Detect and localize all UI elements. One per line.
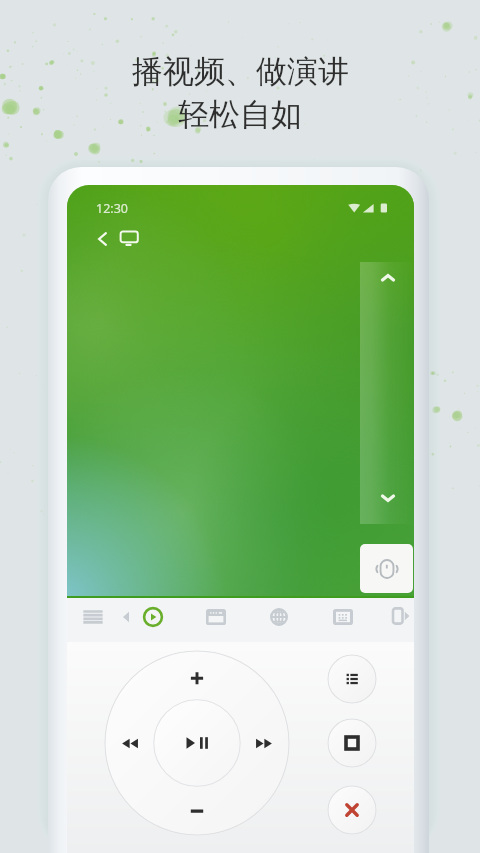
button[interactable]: Page scroll	[360, 262, 414, 524]
button[interactable]: Cast to screen	[116, 226, 142, 252]
button[interactable]: Mouse mode	[360, 544, 413, 593]
button[interactable]: Next tab	[389, 601, 414, 631]
button[interactable]: Window	[201, 602, 231, 632]
staticText: 播视频、做演讲	[132, 52, 349, 91]
staticText: 轻松自如	[178, 95, 302, 134]
button[interactable]: Back	[89, 226, 115, 252]
button[interactable]: Stop	[327, 718, 377, 768]
button[interactable]: Previous tab	[111, 602, 141, 632]
button[interactable]: Playlist	[327, 654, 377, 704]
staticText: 12:30	[96, 200, 128, 217]
button[interactable]: Keyboard	[328, 602, 358, 632]
button[interactable]: Play tab	[138, 602, 168, 632]
button[interactable]: Browser	[264, 602, 294, 632]
button[interactable]: Close	[327, 785, 377, 835]
button[interactable]: Directional pad	[104, 650, 290, 836]
button[interactable]: Menu	[78, 602, 108, 632]
